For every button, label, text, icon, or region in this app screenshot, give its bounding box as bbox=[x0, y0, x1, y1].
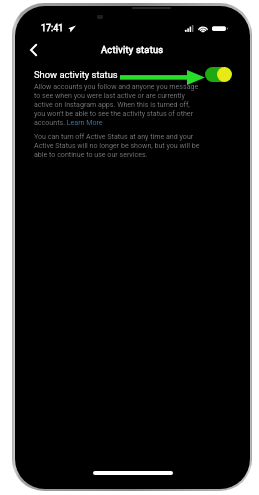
staticText: Show activity status bbox=[34, 69, 118, 80]
staticText: Activity status bbox=[101, 44, 164, 55]
staticText: You can turn off Active Status at any ti… bbox=[34, 132, 200, 159]
staticText: 17:41 bbox=[41, 23, 64, 34]
button[interactable]: Back bbox=[24, 41, 42, 57]
button[interactable]: Show activity status toggle bbox=[205, 67, 232, 82]
staticText: Allow accounts you follow and anyone you… bbox=[34, 82, 200, 127]
